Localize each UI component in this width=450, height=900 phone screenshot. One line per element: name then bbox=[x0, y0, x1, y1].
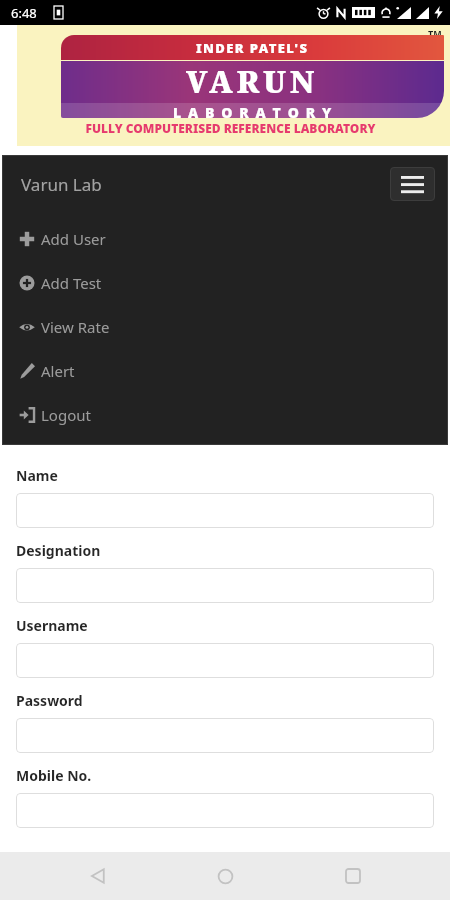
button[interactable]: Logout bbox=[2, 393, 448, 437]
button[interactable]: Designation input field bbox=[16, 568, 434, 603]
staticText: Username bbox=[16, 616, 88, 635]
staticText: 6:48 bbox=[11, 4, 37, 22]
staticText: Mobile No. bbox=[16, 766, 92, 785]
staticText: Logout bbox=[41, 405, 91, 425]
button[interactable]: Password input field bbox=[16, 718, 434, 753]
staticText: Varun Lab bbox=[21, 173, 102, 196]
staticText: INDER PATEL'S bbox=[196, 39, 309, 57]
staticText: FULLY COMPUTERISED REFERENCE LABORATORY bbox=[39, 120, 422, 136]
button[interactable]: Mobile No. input field bbox=[16, 793, 434, 828]
staticText: Name bbox=[16, 466, 58, 485]
staticText: Designation bbox=[16, 541, 101, 560]
staticText: TM bbox=[428, 27, 442, 39]
staticText: Password bbox=[16, 691, 83, 710]
button[interactable]: Recent apps bbox=[323, 852, 383, 900]
button[interactable]: Home bbox=[195, 852, 255, 900]
button[interactable]: Back bbox=[68, 852, 128, 900]
button[interactable]: View Rate bbox=[2, 305, 448, 349]
button[interactable]: Add Test bbox=[2, 261, 448, 305]
staticText: Add User bbox=[41, 229, 106, 249]
button[interactable]: Username input field bbox=[16, 643, 434, 678]
staticText: VARUN bbox=[186, 61, 319, 102]
staticText: L A B O R A T O R Y bbox=[173, 103, 333, 118]
staticText: Add Test bbox=[41, 273, 102, 293]
staticText: View Rate bbox=[41, 317, 110, 337]
staticText: Alert bbox=[41, 361, 75, 381]
button[interactable]: Alert bbox=[2, 349, 448, 393]
button[interactable]: Name input field bbox=[16, 493, 434, 528]
button[interactable]: Add User bbox=[2, 217, 448, 261]
button[interactable]: Open navigation menu bbox=[390, 167, 435, 201]
